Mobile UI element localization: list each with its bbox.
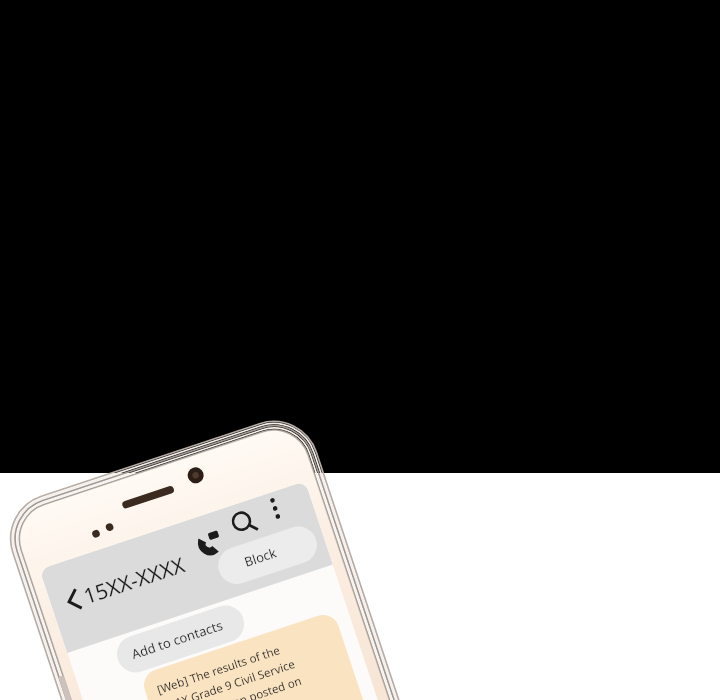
button[interactable]: Messaging conversation on phone mockup (0, 0, 720, 700)
